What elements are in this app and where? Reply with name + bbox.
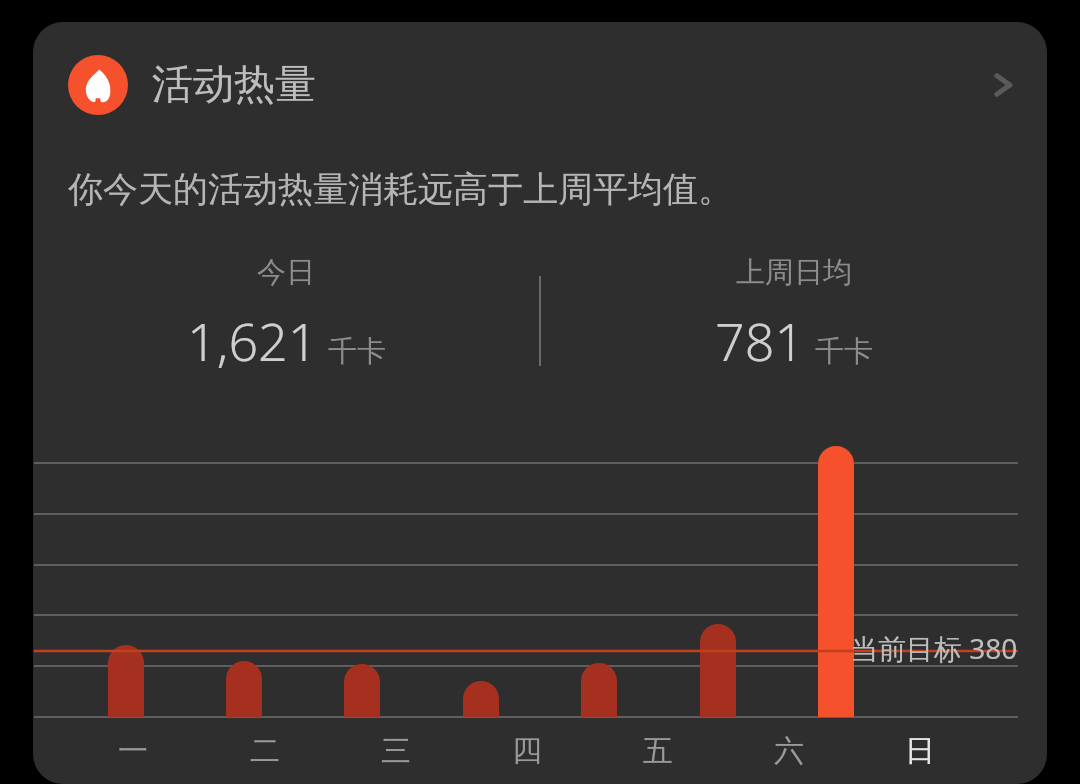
staticText: 三 [381, 732, 411, 770]
staticText: 当前目标 380 [850, 629, 1018, 667]
staticText: 今日 [257, 254, 315, 291]
staticText: 千卡 [815, 333, 873, 370]
staticText: 1,621 [187, 305, 318, 376]
staticText: 781 [715, 305, 805, 376]
staticText: 活动热量 [152, 59, 316, 111]
button[interactable]: 活动热量 [33, 22, 1047, 148]
staticText: 你今天的活动热量消耗远高于上周平均值。 [68, 167, 733, 211]
staticText: 六 [774, 732, 804, 770]
staticText: 一 [118, 732, 148, 770]
staticText: 上周日均 [736, 254, 852, 291]
staticText: 千卡 [328, 333, 386, 370]
staticText: 日 [905, 732, 935, 770]
other: 查看详情 [973, 55, 1033, 115]
staticText: 二 [250, 732, 280, 770]
staticText: 五 [643, 732, 673, 770]
staticText: 四 [512, 732, 542, 770]
